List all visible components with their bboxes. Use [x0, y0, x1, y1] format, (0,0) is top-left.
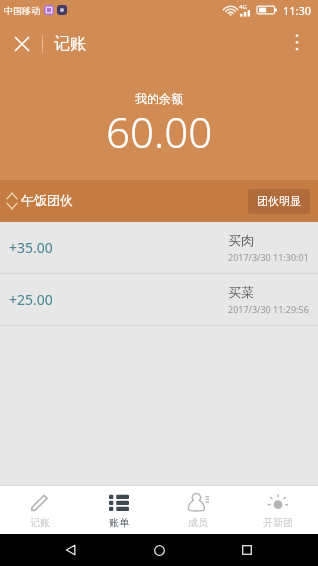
staticText: 我的余额	[135, 91, 183, 106]
staticText: 4G	[239, 3, 247, 11]
staticText: 60.00	[106, 103, 213, 160]
button[interactable]: 开新团	[238, 486, 318, 534]
button[interactable]: 团伙明显	[248, 189, 310, 214]
staticText: 午饭团伙	[21, 192, 73, 208]
staticText: 成员	[188, 516, 208, 529]
staticText: 记账	[54, 34, 86, 54]
staticText: +35.00	[9, 238, 53, 257]
button[interactable]: Home	[142, 534, 176, 566]
button[interactable]: 午饭团伙	[0, 180, 318, 222]
button[interactable]: Back	[54, 534, 88, 566]
staticText: 中国移动	[4, 5, 40, 16]
button[interactable]: 账单	[79, 486, 158, 534]
staticText: 买菜	[228, 284, 254, 300]
staticText: 开新团	[263, 516, 293, 529]
staticText: 买肉	[228, 232, 254, 248]
staticText: 2017/3/30 11:30:01	[228, 251, 309, 263]
staticText: 账单	[109, 516, 129, 529]
button[interactable]: +25.00	[0, 274, 318, 326]
staticText: 11:30	[283, 3, 312, 18]
staticText: +25.00	[9, 290, 53, 309]
staticText: 记账	[30, 516, 50, 529]
button[interactable]: Recents	[230, 534, 264, 566]
button[interactable]: 成员	[158, 486, 238, 534]
staticText: 2017/3/30 11:29:56	[228, 303, 309, 315]
staticText: 团伙明显	[257, 194, 301, 208]
button[interactable]: +35.00	[0, 222, 318, 274]
button[interactable]: More options	[274, 22, 318, 66]
button[interactable]: 记账	[0, 486, 79, 534]
button[interactable]: Close	[0, 22, 44, 66]
